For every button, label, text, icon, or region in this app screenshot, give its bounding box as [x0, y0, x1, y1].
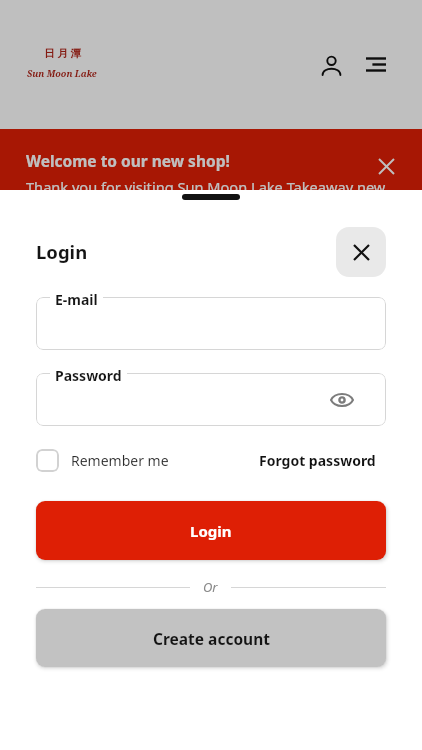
staticText: 日 月 潭 — [44, 46, 81, 60]
staticText: Sun Moon Lake — [27, 67, 97, 79]
staticText: Password — [55, 366, 122, 385]
button[interactable] — [36, 297, 386, 350]
button[interactable]: Dismiss banner — [370, 150, 402, 182]
button[interactable]: Account — [309, 43, 353, 87]
button[interactable]: Close — [336, 227, 386, 277]
button[interactable] — [36, 373, 386, 426]
staticText: Remember me — [71, 451, 169, 470]
button[interactable]: Create account — [36, 609, 386, 667]
staticText: Login — [36, 239, 88, 264]
button[interactable]: Menu — [354, 45, 398, 89]
staticText: Forgot password — [259, 451, 376, 470]
staticText: Login — [190, 521, 232, 541]
staticText: E-mail — [55, 290, 98, 309]
staticText: Welcome to our new shop! — [26, 150, 230, 171]
staticText: Or — [203, 578, 218, 596]
button[interactable]: Forgot password — [259, 451, 376, 470]
staticText: Create account — [153, 628, 270, 649]
button[interactable]: Login — [36, 501, 386, 560]
button[interactable]: Remember me — [36, 449, 169, 472]
staticText: Thank you for visiting Sun Moon Lake Tak… — [26, 177, 396, 218]
